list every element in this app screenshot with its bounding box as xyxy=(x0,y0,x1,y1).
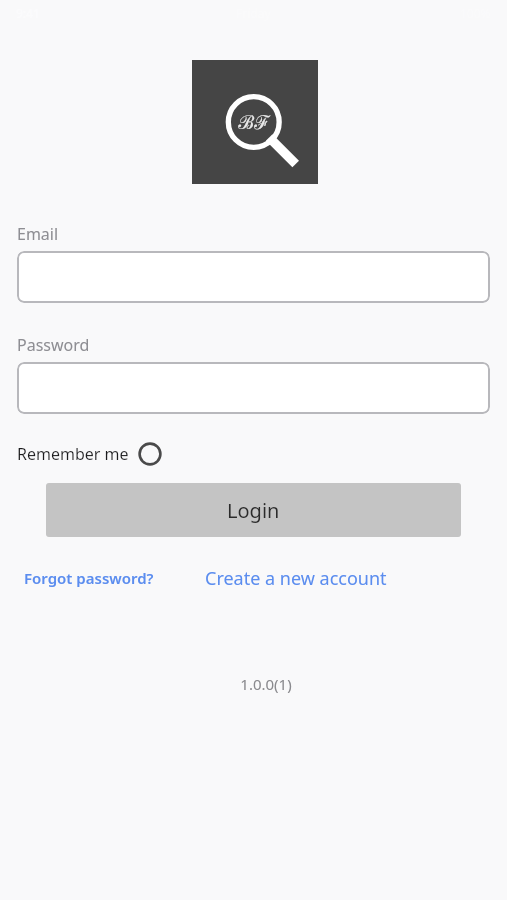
staticText: Remember me xyxy=(17,443,129,465)
button[interactable] xyxy=(17,251,490,303)
button[interactable]: Forgot password? xyxy=(24,568,154,588)
staticText: ℬℱ xyxy=(238,109,270,135)
button[interactable] xyxy=(17,362,490,414)
staticText: Forgot password? xyxy=(24,568,154,588)
staticText: Create a new account xyxy=(205,566,387,591)
staticText: Login xyxy=(227,497,280,524)
button[interactable]: Create a new account xyxy=(205,566,387,591)
staticText: 1.0.0(1) xyxy=(240,674,292,694)
button[interactable]: Login xyxy=(46,483,461,537)
staticText: Email xyxy=(17,223,59,245)
staticText: Password xyxy=(17,334,90,356)
button[interactable]: Remember me xyxy=(17,440,168,468)
